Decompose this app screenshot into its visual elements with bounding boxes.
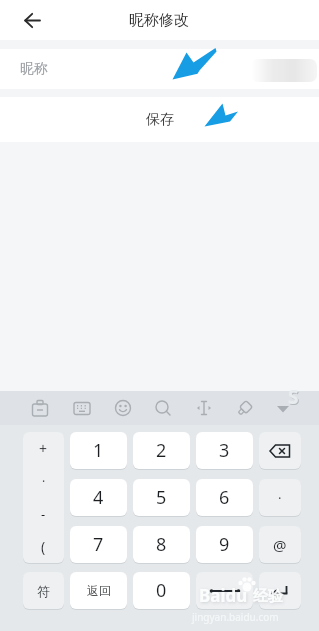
staticText: + bbox=[39, 439, 48, 458]
staticText: 7 bbox=[93, 532, 104, 557]
staticText: 0 bbox=[156, 578, 167, 603]
button[interactable]: 8 bbox=[133, 526, 190, 563]
staticText: · bbox=[278, 489, 282, 507]
button[interactable]: 保存 bbox=[0, 97, 319, 142]
button[interactable]: 昵称 bbox=[0, 49, 319, 89]
staticText: - bbox=[41, 505, 46, 523]
button[interactable] bbox=[16, 4, 48, 36]
button[interactable] bbox=[192, 396, 216, 420]
staticText: 3 bbox=[219, 438, 230, 463]
button[interactable] bbox=[259, 572, 301, 609]
staticText: S bbox=[288, 384, 299, 410]
button[interactable] bbox=[271, 396, 295, 420]
button[interactable] bbox=[151, 396, 175, 420]
staticText: 8 bbox=[156, 532, 167, 557]
staticText: ( bbox=[41, 537, 46, 556]
staticText: 5 bbox=[156, 485, 167, 510]
staticText: 2 bbox=[156, 438, 167, 463]
staticText: @ bbox=[273, 535, 287, 555]
button[interactable]: 1 bbox=[70, 432, 127, 469]
button[interactable]: 0 bbox=[133, 572, 190, 609]
staticText: 返回 bbox=[87, 583, 111, 598]
staticText: 保存 bbox=[146, 111, 174, 129]
button[interactable]: 5 bbox=[133, 479, 190, 516]
staticText: 9 bbox=[219, 532, 230, 557]
button[interactable]: + bbox=[23, 432, 64, 563]
button[interactable]: 9 bbox=[196, 526, 253, 563]
staticText: · bbox=[42, 473, 46, 489]
button[interactable] bbox=[28, 396, 52, 420]
button[interactable]: 3 bbox=[196, 432, 253, 469]
staticText: jingyan.baidu.com bbox=[192, 610, 279, 624]
button[interactable] bbox=[234, 396, 258, 420]
staticText: 4 bbox=[93, 485, 104, 510]
button[interactable]: 2 bbox=[133, 432, 190, 469]
staticText: 符 bbox=[37, 583, 50, 599]
button[interactable]: 7 bbox=[70, 526, 127, 563]
button[interactable] bbox=[259, 432, 301, 469]
button[interactable]: 符 bbox=[23, 572, 64, 609]
button[interactable]: @ bbox=[259, 526, 301, 563]
button[interactable]: 6 bbox=[196, 479, 253, 516]
button[interactable]: · bbox=[259, 479, 301, 516]
staticText: 6 bbox=[219, 485, 230, 510]
button[interactable]: 4 bbox=[70, 479, 127, 516]
staticText: 昵称 bbox=[20, 60, 48, 78]
staticText: S bbox=[289, 385, 300, 411]
button[interactable]: 返回 bbox=[70, 572, 127, 609]
staticText: 经验 bbox=[253, 587, 283, 606]
button[interactable] bbox=[70, 396, 94, 420]
staticText: 昵称修改 bbox=[129, 11, 189, 30]
staticText: Baidu bbox=[199, 584, 248, 607]
button[interactable] bbox=[111, 396, 135, 420]
staticText: 1 bbox=[93, 438, 104, 463]
button[interactable] bbox=[196, 572, 253, 609]
